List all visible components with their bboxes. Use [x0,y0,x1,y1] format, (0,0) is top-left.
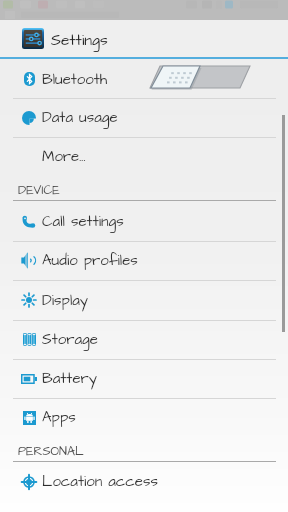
staticText: Bluetooth [42,69,108,90]
button[interactable]: Bluetooth toggle [146,62,256,94]
button[interactable]: Audio profiles [0,241,288,280]
button[interactable]: Settings [0,20,288,57]
button[interactable]: Bluetooth [0,59,288,99]
staticText: Settings [51,30,108,52]
staticText: Data usage [42,107,118,128]
button[interactable]: Data usage [0,98,288,137]
button[interactable]: Storage [0,320,288,359]
staticText: Location access [42,471,159,492]
staticText: Display [42,290,89,311]
button[interactable]: Display [0,280,288,320]
button[interactable]: Apps [0,398,288,437]
staticText: Audio profiles [42,250,138,271]
staticText: Apps [42,407,76,428]
staticText: More... [42,146,86,167]
staticText: DEVICE [18,182,60,200]
staticText: Storage [42,329,98,350]
staticText: Call settings [42,211,124,232]
button[interactable]: Call settings [0,201,288,241]
button[interactable]: More... [0,137,288,176]
button[interactable]: Location access [0,462,288,501]
staticText: Battery [42,368,98,389]
staticText: PERSONAL [18,443,84,461]
button[interactable]: Battery [0,359,288,398]
